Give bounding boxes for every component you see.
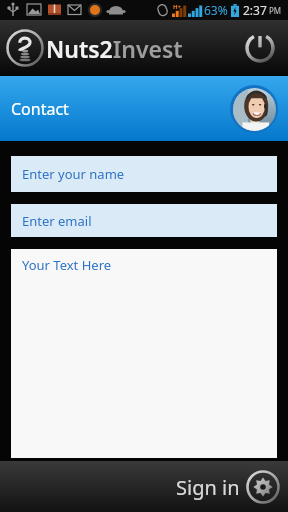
button[interactable]: Your Text Here (11, 249, 277, 458)
button[interactable]: Sign in (176, 470, 280, 504)
button[interactable]: Enter your name (11, 156, 277, 192)
button[interactable]: Power / Log out (242, 30, 278, 66)
staticText: Enter email (22, 212, 92, 230)
button[interactable]: Contact (0, 76, 288, 141)
staticText: PM (269, 5, 282, 16)
button[interactable]: Nuts2Invest home (6, 29, 183, 67)
staticText: Enter your name (22, 165, 125, 183)
button[interactable]: Enter email (11, 204, 277, 237)
staticText: Sign in (176, 474, 240, 501)
staticText: Contact (11, 98, 69, 120)
other: Support agent avatar (230, 85, 278, 133)
staticText: 63% (204, 2, 228, 18)
staticText: 2:37 (243, 2, 267, 18)
staticText: Nuts2Invest (46, 33, 183, 64)
staticText: H+ (173, 3, 182, 11)
staticText: Your Text Here (22, 256, 112, 274)
